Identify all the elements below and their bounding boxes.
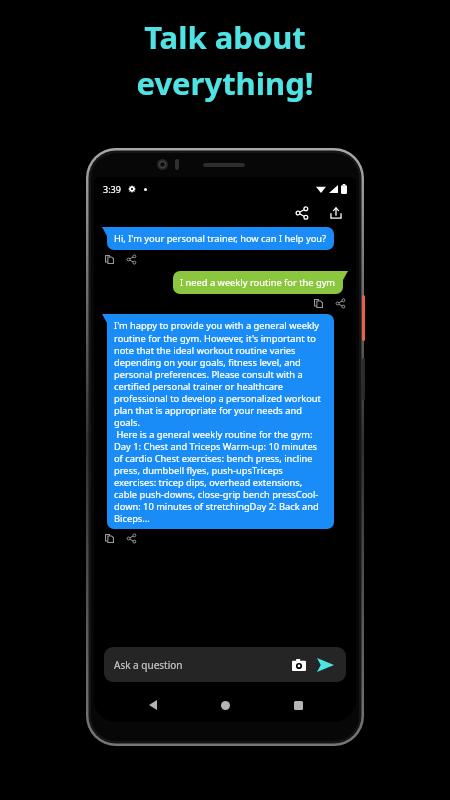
button[interactable]: Send bbox=[314, 654, 336, 676]
button[interactable]: Back bbox=[139, 691, 167, 719]
staticText: Hi, I'm your personal trainer, how can I… bbox=[114, 232, 327, 245]
staticText: Ask a question bbox=[114, 658, 183, 672]
button[interactable]: Ask a question bbox=[104, 647, 346, 682]
button[interactable]: I need a weekly routine for the gym bbox=[173, 271, 343, 294]
button[interactable]: Home bbox=[211, 691, 239, 719]
button[interactable]: Copy message bbox=[102, 531, 117, 546]
staticText: everything! bbox=[136, 62, 314, 104]
button[interactable]: Camera bbox=[289, 655, 309, 675]
button[interactable]: Share message bbox=[124, 252, 139, 267]
button[interactable]: Export conversation bbox=[326, 203, 346, 223]
button[interactable]: Copy message bbox=[102, 252, 117, 267]
button[interactable]: Share conversation bbox=[292, 203, 312, 223]
staticText: Talk about bbox=[144, 16, 306, 58]
staticText: 3:39 bbox=[103, 183, 121, 195]
staticText: I need a weekly routine for the gym bbox=[180, 276, 336, 289]
button[interactable]: Share message bbox=[124, 531, 139, 546]
button[interactable]: Copy message bbox=[311, 296, 326, 311]
button[interactable]: Share message bbox=[333, 296, 348, 311]
staticText: I'm happy to provide you with a general … bbox=[114, 319, 327, 524]
button[interactable]: Hi, I'm your personal trainer, how can I… bbox=[107, 227, 334, 250]
button[interactable]: I'm happy to provide you with a general … bbox=[107, 314, 334, 529]
button[interactable]: Recent apps bbox=[284, 691, 312, 719]
